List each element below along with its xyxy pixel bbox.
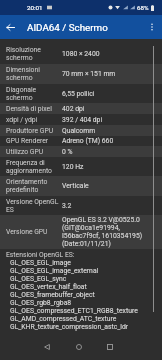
button[interactable]: Recent apps — [102, 339, 118, 355]
button[interactable]: Densità di pixel — [0, 103, 162, 114]
staticText: 1080 × 2400 — [62, 50, 158, 58]
button[interactable]: Risoluzione schermo — [0, 44, 162, 64]
staticText: Qualcomm — [62, 127, 158, 135]
staticText: Frequenza di aggiornamento — [6, 159, 62, 175]
staticText: Densità di pixel — [6, 105, 62, 113]
staticText: 392 / 404 dpi — [62, 116, 158, 124]
button[interactable]: xdpi / ydpi — [0, 114, 162, 125]
staticText: Produttore GPU — [6, 127, 62, 135]
button[interactable]: Versione GPU — [0, 215, 162, 249]
staticText: OpenGL ES 3.2 V@0525.0 (GIT@0ca1e91994, … — [62, 216, 158, 248]
button[interactable]: Frequenza di aggiornamento — [0, 157, 162, 176]
staticText: 70 mm × 151 mm — [62, 70, 158, 78]
staticText: Diagonale schermo — [6, 86, 62, 102]
staticText: xdpi / ydpi — [6, 116, 62, 124]
staticText: 20:01 — [27, 4, 43, 11]
button[interactable]: Home — [71, 339, 87, 355]
staticText: 0 % — [62, 148, 158, 156]
button[interactable]: Back — [0, 17, 20, 37]
staticText: Adreno (TM) 660 — [62, 137, 158, 145]
staticText: Estensioni OpenGL ES: — [6, 251, 75, 259]
staticText: 402 dpi — [62, 105, 158, 113]
button[interactable]: More options — [142, 17, 162, 37]
staticText: Risoluzione schermo — [6, 46, 62, 62]
staticText: GL_OES_EGL_image GL_OES_EGL_image_extern… — [10, 259, 138, 331]
staticText: 6,55 pollici — [62, 90, 158, 98]
button[interactable]: Produttore GPU — [0, 125, 162, 136]
button[interactable]: Dimensioni schermo — [0, 64, 162, 84]
staticText: Versione GPU — [6, 228, 62, 236]
staticText: 120 Hz — [62, 163, 158, 171]
staticText: 68% — [137, 4, 149, 11]
staticText: AIDA64 / Schermo — [27, 22, 108, 33]
staticText: Versione OpenGL ES — [6, 198, 62, 214]
button[interactable]: GPU Renderer — [0, 136, 162, 146]
staticText: Verticale — [62, 182, 158, 190]
button[interactable]: Orientamento predefinito — [0, 176, 162, 196]
button[interactable]: Back — [39, 339, 55, 355]
button[interactable]: Utilizzo GPU — [0, 146, 162, 157]
staticText: GPU Renderer — [6, 137, 62, 145]
staticText: 3.2 — [62, 202, 158, 210]
button[interactable]: Versione OpenGL ES — [0, 196, 162, 215]
staticText: Dimensioni schermo — [6, 66, 62, 82]
button[interactable]: Diagonale schermo — [0, 84, 162, 103]
staticText: Utilizzo GPU — [6, 148, 62, 156]
staticText: Orientamento predefinito — [6, 178, 62, 194]
